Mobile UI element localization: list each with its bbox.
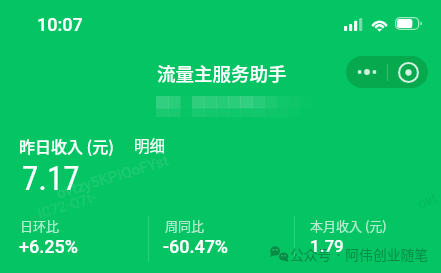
staticText: 公众号 · 阿伟创业随笔 bbox=[290, 244, 429, 264]
staticText: 本月收入 (元) bbox=[310, 216, 387, 235]
staticText: 昨日收入 (元) bbox=[19, 134, 114, 157]
button[interactable]: Close mini program bbox=[388, 56, 428, 88]
staticText: ovt bbox=[415, 190, 439, 211]
button[interactable]: More options bbox=[346, 56, 387, 88]
button[interactable]: 明细 bbox=[132, 134, 168, 156]
staticText: IC72-Q7t- bbox=[36, 188, 99, 222]
staticText: 7.17 bbox=[22, 159, 80, 198]
staticText: -60.47% bbox=[163, 236, 229, 257]
staticText: +6.25% bbox=[19, 236, 78, 257]
staticText: 周同比 bbox=[165, 216, 205, 235]
staticText: 1.79 bbox=[310, 236, 344, 256]
staticText: 10:07 bbox=[37, 14, 83, 35]
staticText: ovtzy5KPIQoFYst bbox=[54, 151, 172, 203]
staticText: 流量主服务助手 bbox=[157, 60, 287, 87]
staticText: 明细 bbox=[134, 134, 166, 156]
staticText: 日环比 bbox=[20, 216, 60, 235]
